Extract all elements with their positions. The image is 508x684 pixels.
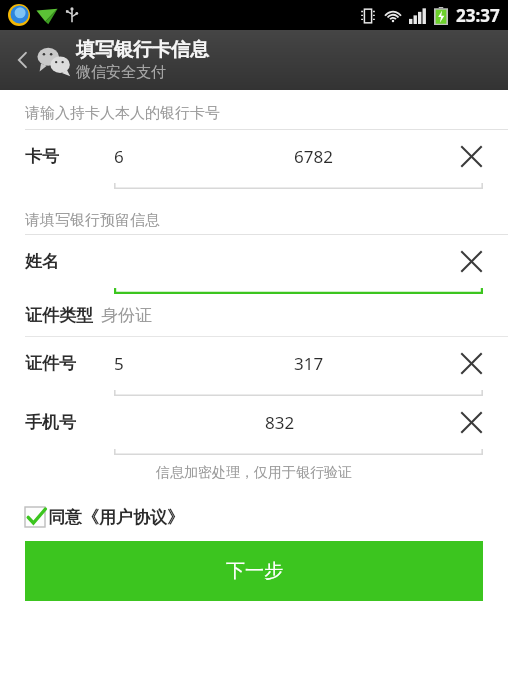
staticText: 证件号 [25,353,76,374]
button[interactable]: 清除 [456,141,486,171]
staticText: 6 [114,145,124,168]
button[interactable]: 证件类型 [0,294,508,336]
staticText: 5 [114,352,124,375]
staticText: 同意《用户协议》 [48,507,184,528]
staticText: 微信安全支付 [76,63,166,82]
staticText: 23:37 [456,4,500,27]
button[interactable]: 姓名 [0,235,508,294]
button[interactable]: 同意《用户协议》 [25,504,184,530]
staticText: 6782 [294,145,333,168]
staticText: 请填写银行预留信息 [25,211,160,230]
staticText: 卡号 [25,146,59,167]
button[interactable]: 清除 [456,348,486,378]
button[interactable]: 下一步 [25,541,483,601]
button[interactable]: 手机号 [0,396,508,455]
staticText: 证件类型 [25,305,93,326]
button[interactable]: 卡号 [0,130,508,189]
staticText: 手机号 [25,412,76,433]
staticText: 832 [265,411,295,434]
staticText: 请输入持卡人本人的银行卡号 [25,104,220,123]
button[interactable]: 清除 [456,246,486,276]
button[interactable]: 返回 [6,43,40,77]
staticText: 填写银行卡信息 [76,38,209,62]
button[interactable]: 清除 [456,407,486,437]
staticText: 身份证 [101,305,152,326]
staticText: 姓名 [25,251,59,272]
button[interactable]: 证件号 [0,337,508,396]
staticText: 下一步 [226,559,283,583]
staticText: 信息加密处理，仅用于银行验证 [156,464,352,482]
staticText: 317 [294,352,324,375]
